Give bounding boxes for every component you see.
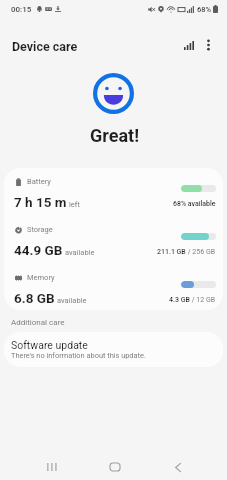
- staticText: 68% available: [173, 200, 216, 208]
- staticText: 44.9 GB: [14, 242, 63, 258]
- staticText: Memory: [27, 273, 55, 282]
- staticText: Additional care: [11, 318, 65, 327]
- staticText: available: [65, 248, 95, 257]
- staticText: Battery: [27, 177, 51, 186]
- staticText: Great!: [90, 125, 140, 146]
- button[interactable]: Usage statistics: [177, 33, 201, 57]
- staticText: / 256 GB: [186, 248, 216, 256]
- button[interactable]: Back: [161, 455, 195, 479]
- staticText: 7 h 15 m: [14, 194, 67, 210]
- staticText: Storage: [27, 225, 53, 234]
- staticText: 4.3 GB: [169, 296, 190, 304]
- staticText: / 12 GB: [190, 296, 216, 304]
- staticText: 6.8 GB: [14, 290, 55, 306]
- staticText: 00:15: [11, 5, 32, 14]
- staticText: Software update: [11, 339, 88, 351]
- staticText: Device care: [12, 39, 78, 54]
- button[interactable]: Memory: [4, 264, 223, 310]
- staticText: 211.1 GB: [157, 248, 186, 256]
- staticText: 68%: [197, 5, 212, 14]
- button[interactable]: More options: [196, 33, 220, 57]
- staticText: available: [57, 296, 87, 305]
- staticText: left: [69, 200, 80, 209]
- button[interactable]: Battery: [4, 168, 223, 216]
- staticText: There's no information about this update…: [11, 351, 146, 360]
- button[interactable]: Software update: [4, 332, 223, 367]
- button[interactable]: Home: [98, 455, 132, 479]
- button[interactable]: Storage: [4, 216, 223, 264]
- button[interactable]: Recent apps: [34, 455, 68, 479]
